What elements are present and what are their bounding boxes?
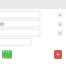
- staticText: +: [56, 50, 60, 59]
- button[interactable]: Options: [58, 31, 62, 35]
- staticText: ab: [0, 20, 4, 27]
- button[interactable]: Options: [58, 22, 62, 26]
- staticText: Filter: [2, 45, 11, 64]
- button[interactable]: Delete: [54, 50, 62, 59]
- button[interactable]: Filter: [2, 50, 12, 59]
- button[interactable]: Options: [58, 13, 62, 17]
